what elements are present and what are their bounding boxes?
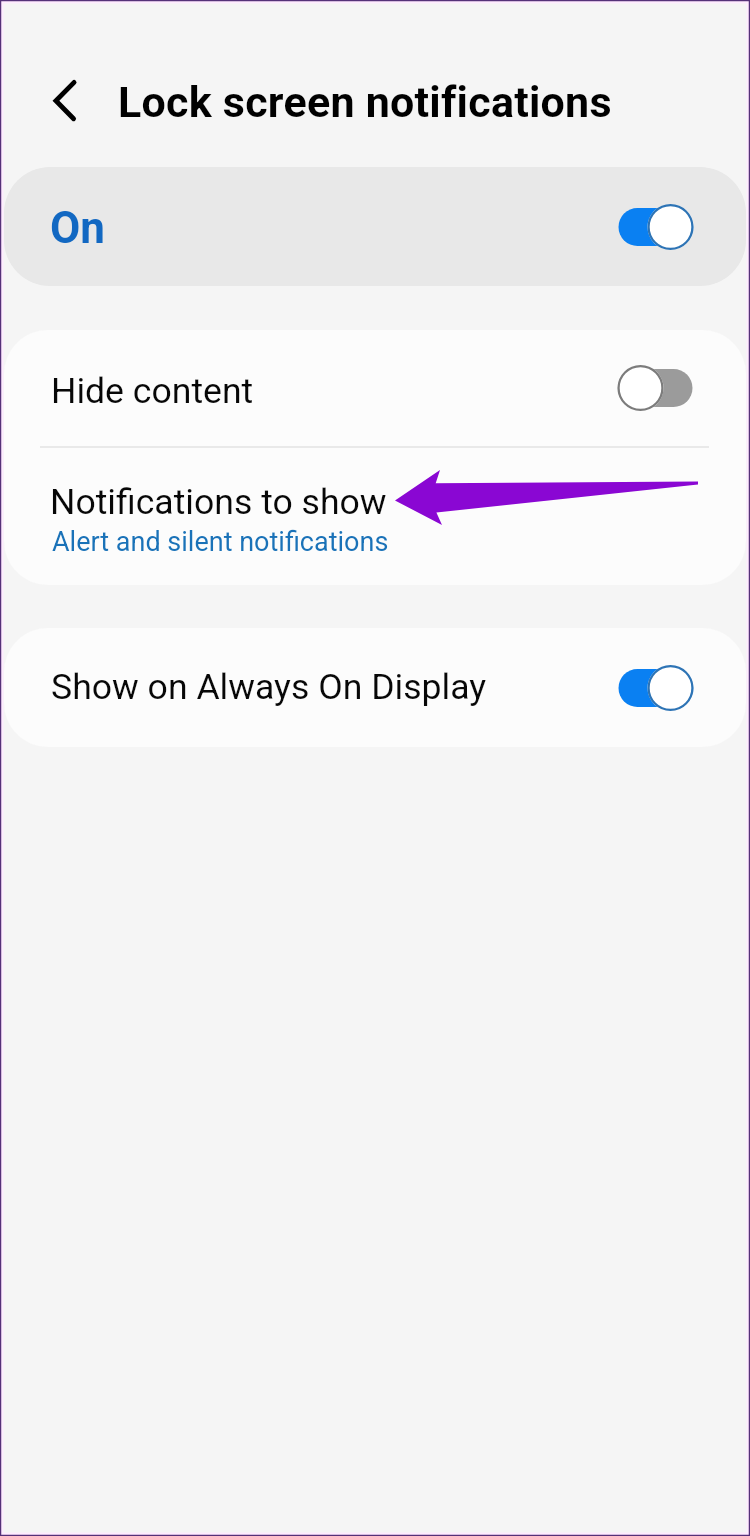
button[interactable]: Notifications to show (4, 447, 746, 585)
staticText: Hide content (51, 370, 254, 412)
button[interactable]: Hide content (4, 330, 746, 446)
staticText: Notifications to show (50, 481, 387, 523)
staticText: On (50, 202, 105, 254)
staticText: Lock screen notifications (118, 77, 612, 127)
staticText: Show on Always On Display (51, 666, 487, 708)
staticText: Alert and silent notifications (52, 526, 389, 558)
button[interactable]: On (4, 167, 746, 286)
button[interactable]: Show on Always On Display (4, 628, 746, 747)
button[interactable]: Navigate up (26, 62, 104, 140)
